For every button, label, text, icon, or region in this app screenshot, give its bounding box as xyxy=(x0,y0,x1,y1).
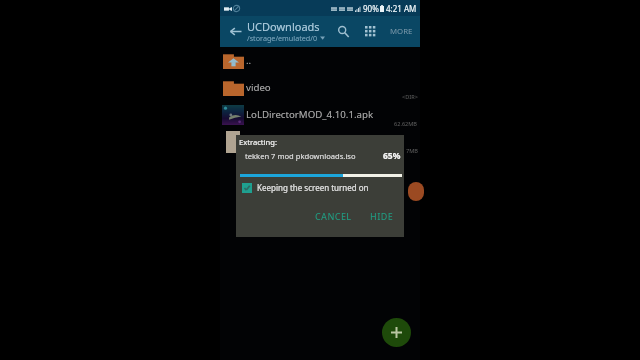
staticText: CANCEL xyxy=(315,210,352,222)
staticText: MORE xyxy=(390,26,413,37)
button[interactable]: LoLDirectorMOD_4.10.1.apk xyxy=(220,101,420,128)
staticText: video xyxy=(246,81,271,94)
staticText: .. xyxy=(246,54,252,67)
button[interactable]: MORE xyxy=(386,16,416,47)
button[interactable]: Back xyxy=(224,16,246,47)
staticText: tekken 7 mod pkdownloads.iso xyxy=(245,151,356,161)
staticText: LoLDirectorMOD_4.10.1.apk xyxy=(246,108,374,121)
button[interactable]: HIDE xyxy=(366,207,398,225)
button[interactable]: Apps grid xyxy=(359,16,381,47)
staticText: Keeping the screen turned on xyxy=(257,182,369,193)
button[interactable]: .. xyxy=(220,47,420,74)
staticText: 65% xyxy=(383,150,401,162)
button[interactable]: CANCEL xyxy=(311,207,356,225)
button[interactable]: Keeping the screen turned on xyxy=(242,182,369,193)
staticText: 4:21 AM xyxy=(386,3,417,14)
staticText: 90% xyxy=(363,3,379,14)
staticText: Extracting: xyxy=(239,137,277,147)
button[interactable]: 7MB xyxy=(220,128,420,155)
staticText: UCDownloads xyxy=(247,19,320,34)
button[interactable]: Add xyxy=(382,318,411,347)
staticText: 7MB xyxy=(406,147,418,155)
staticText: HIDE xyxy=(370,210,394,222)
button[interactable]: Search xyxy=(332,16,354,47)
button[interactable]: video xyxy=(220,74,420,101)
staticText: <DIR> xyxy=(402,93,418,101)
staticText: /storage/emulated/0 xyxy=(247,33,318,43)
staticText: 62.62MB xyxy=(394,120,418,128)
